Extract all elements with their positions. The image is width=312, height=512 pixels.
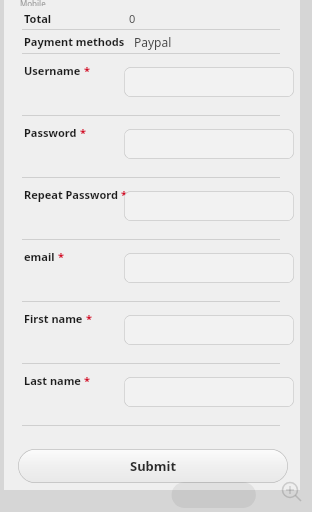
staticText: Payment methods (24, 34, 125, 49)
staticText: * (58, 249, 64, 264)
staticText: * (84, 63, 90, 78)
button[interactable] (124, 67, 294, 97)
staticText: Submit (130, 457, 177, 475)
staticText: * (86, 311, 92, 326)
staticText: Last name (24, 373, 81, 388)
button[interactable]: First name (4, 302, 300, 363)
button[interactable] (124, 377, 294, 407)
button[interactable]: Submit (18, 449, 288, 483)
staticText: * (84, 373, 90, 388)
button[interactable]: Username (4, 54, 300, 115)
button[interactable]: Repeat Password (4, 178, 300, 239)
staticText: * (121, 187, 127, 202)
staticText: First name (24, 311, 83, 326)
staticText: Total (24, 11, 52, 26)
staticText: * (80, 125, 86, 140)
button[interactable]: Last name (4, 364, 300, 425)
staticText: Password (24, 125, 77, 140)
staticText: Paypal (134, 34, 172, 50)
staticText: Repeat Password (24, 187, 118, 202)
button[interactable] (124, 253, 294, 283)
button[interactable]: email (4, 240, 300, 301)
button[interactable] (124, 315, 294, 345)
staticText: email (24, 249, 55, 264)
button[interactable]: Payment methods (4, 30, 300, 53)
staticText: Mobile (20, 0, 46, 6)
staticText: 0 (129, 11, 136, 26)
button[interactable]: Total (4, 8, 300, 29)
button[interactable]: Password (4, 116, 300, 177)
button[interactable] (124, 129, 294, 159)
button[interactable] (124, 191, 294, 221)
staticText: Username (24, 63, 81, 78)
